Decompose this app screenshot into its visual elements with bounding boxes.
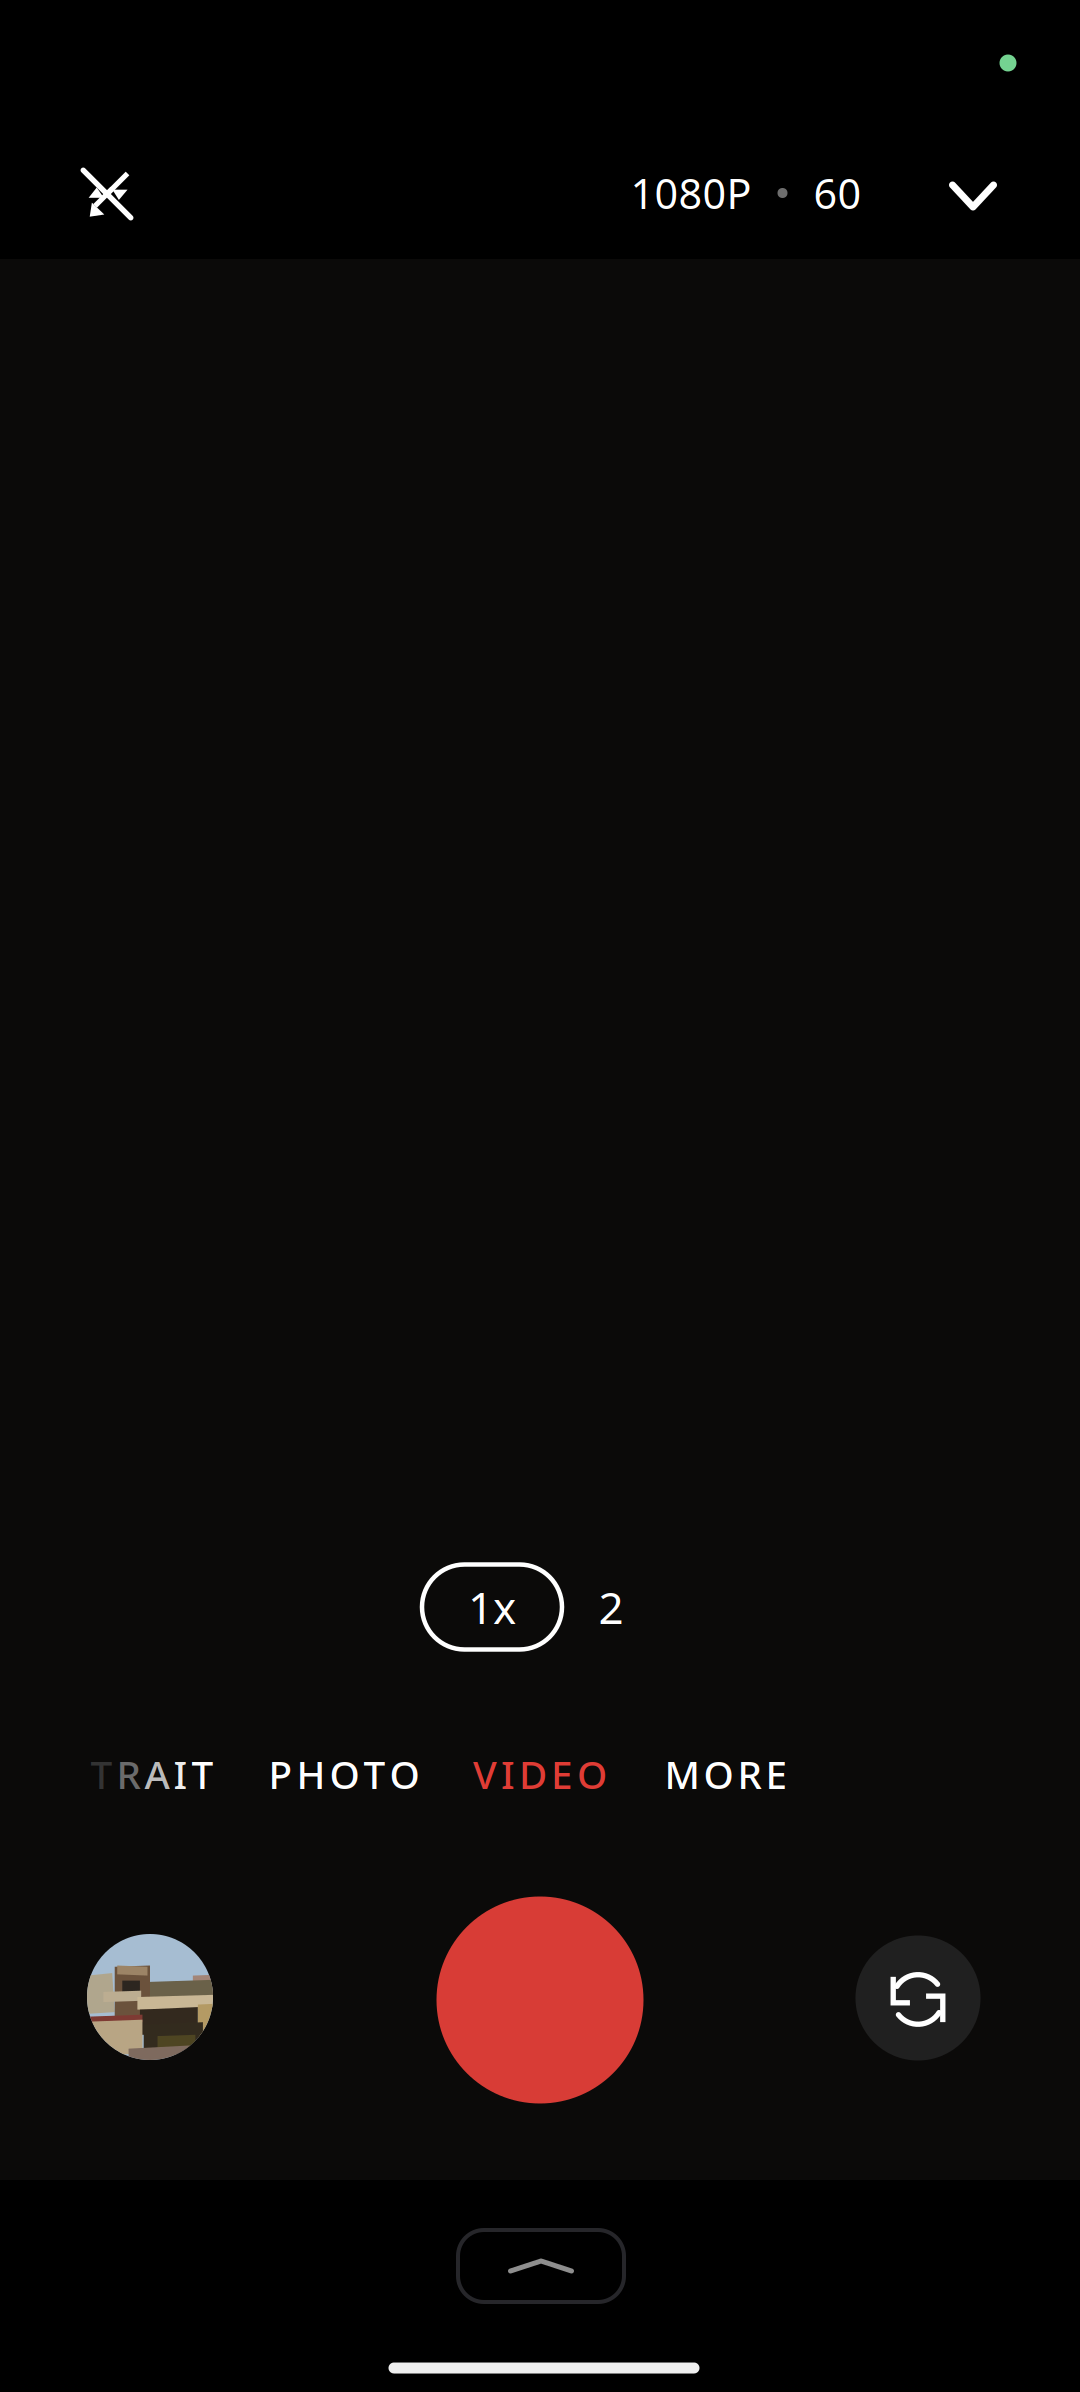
staticText: A	[144, 1748, 169, 1800]
button[interactable]: Start recording	[420, 1880, 660, 2120]
button[interactable]: 1x	[422, 1564, 562, 1649]
button[interactable]: V I D E O	[455, 1735, 625, 1813]
staticText	[140, 1748, 144, 1800]
staticText: M O R E	[664, 1748, 787, 1800]
staticText: 2	[598, 1578, 623, 1636]
staticText: V I D E O	[473, 1748, 607, 1800]
staticText: P H O T O	[268, 1748, 419, 1800]
button[interactable]: Camera controls	[458, 2230, 624, 2302]
staticText: 1080P	[630, 166, 751, 220]
button[interactable]: Switch camera	[838, 1918, 998, 2078]
button[interactable]: Aspect ratio	[52, 139, 162, 249]
button[interactable]: Photo library	[65, 1912, 235, 2082]
button[interactable]: M O R E	[646, 1735, 806, 1813]
button[interactable]: 1080P	[630, 145, 861, 241]
button[interactable]: P H O T O	[259, 1735, 429, 1813]
button[interactable]: More camera options	[921, 144, 1025, 248]
button[interactable]: T	[77, 1735, 227, 1813]
staticText: R	[116, 1748, 140, 1800]
staticText: 1x	[468, 1578, 516, 1636]
staticText: I	[173, 1748, 187, 1800]
staticText	[187, 1748, 191, 1800]
staticText: 60	[813, 166, 861, 220]
staticText: T	[90, 1748, 112, 1800]
staticText: T	[191, 1748, 213, 1800]
button[interactable]: 2	[573, 1564, 649, 1649]
